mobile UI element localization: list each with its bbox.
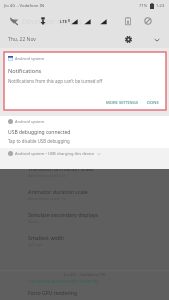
button[interactable]: Android system (0, 116, 169, 148)
staticText: Hardware accelerated rendering (28, 278, 100, 284)
staticText: 71% (139, 3, 148, 9)
staticText: Notifications (8, 67, 42, 75)
button[interactable]: Animator duration scale (0, 188, 169, 211)
staticText: None (28, 218, 39, 224)
staticText: Jio 4G – Vodafone IN (4, 3, 45, 9)
staticText: Notifications from this app can't be tur… (8, 78, 103, 84)
staticText: USB debugging connected (8, 129, 71, 136)
staticText: MORE SETTINGS (106, 100, 138, 106)
staticText: Animator duration scale (28, 188, 88, 195)
button[interactable]: Android system (4, 52, 166, 110)
button[interactable]: Transition animation scale (0, 165, 169, 188)
staticText: Android system (15, 56, 45, 61)
staticText: R (68, 19, 70, 23)
staticText: Android system • USB charging this devic… (15, 151, 95, 156)
staticText: Smallest width (28, 234, 65, 241)
button[interactable]: DONE (145, 98, 161, 108)
button[interactable]: MORE SETTINGS (104, 98, 140, 108)
staticText: Android system (15, 119, 45, 124)
staticText: LTE (60, 19, 68, 25)
staticText: DONE (147, 100, 159, 106)
staticText: 1:23 (156, 3, 165, 9)
button[interactable]: Expand quick settings (151, 34, 162, 45)
staticText: Simulate secondary displays (28, 211, 99, 218)
staticText: Thu, 22 Nov (8, 36, 36, 43)
button[interactable]: Settings (123, 34, 134, 45)
staticText: Force GPU rendering (28, 290, 78, 297)
staticText: Transition animation scale (28, 165, 94, 172)
button[interactable]: Android system • USB charging this devic… (0, 148, 169, 169)
staticText: Tap to disable USB debugging (8, 138, 70, 144)
staticText: Developer options (22, 17, 83, 27)
button[interactable]: Simulate secondary displays (0, 211, 169, 234)
